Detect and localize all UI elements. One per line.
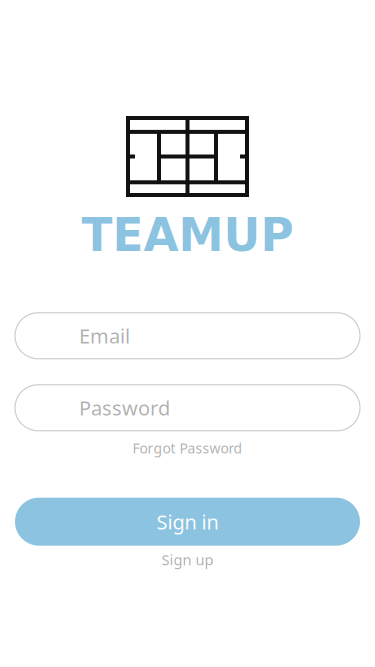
staticText: TEAMUP	[81, 209, 293, 262]
staticText: Forgot Password	[132, 439, 242, 458]
button[interactable]: Password	[0, 385, 375, 431]
button[interactable]: Sign in	[0, 498, 375, 546]
staticText: Password	[79, 394, 170, 421]
staticText: Sign in	[156, 508, 218, 535]
button[interactable]: Email	[0, 313, 375, 359]
button[interactable]: Forgot Password	[122, 431, 252, 462]
staticText: Sign up	[161, 550, 213, 570]
button[interactable]: Sign up	[151, 546, 223, 574]
staticText: Email	[79, 322, 130, 349]
